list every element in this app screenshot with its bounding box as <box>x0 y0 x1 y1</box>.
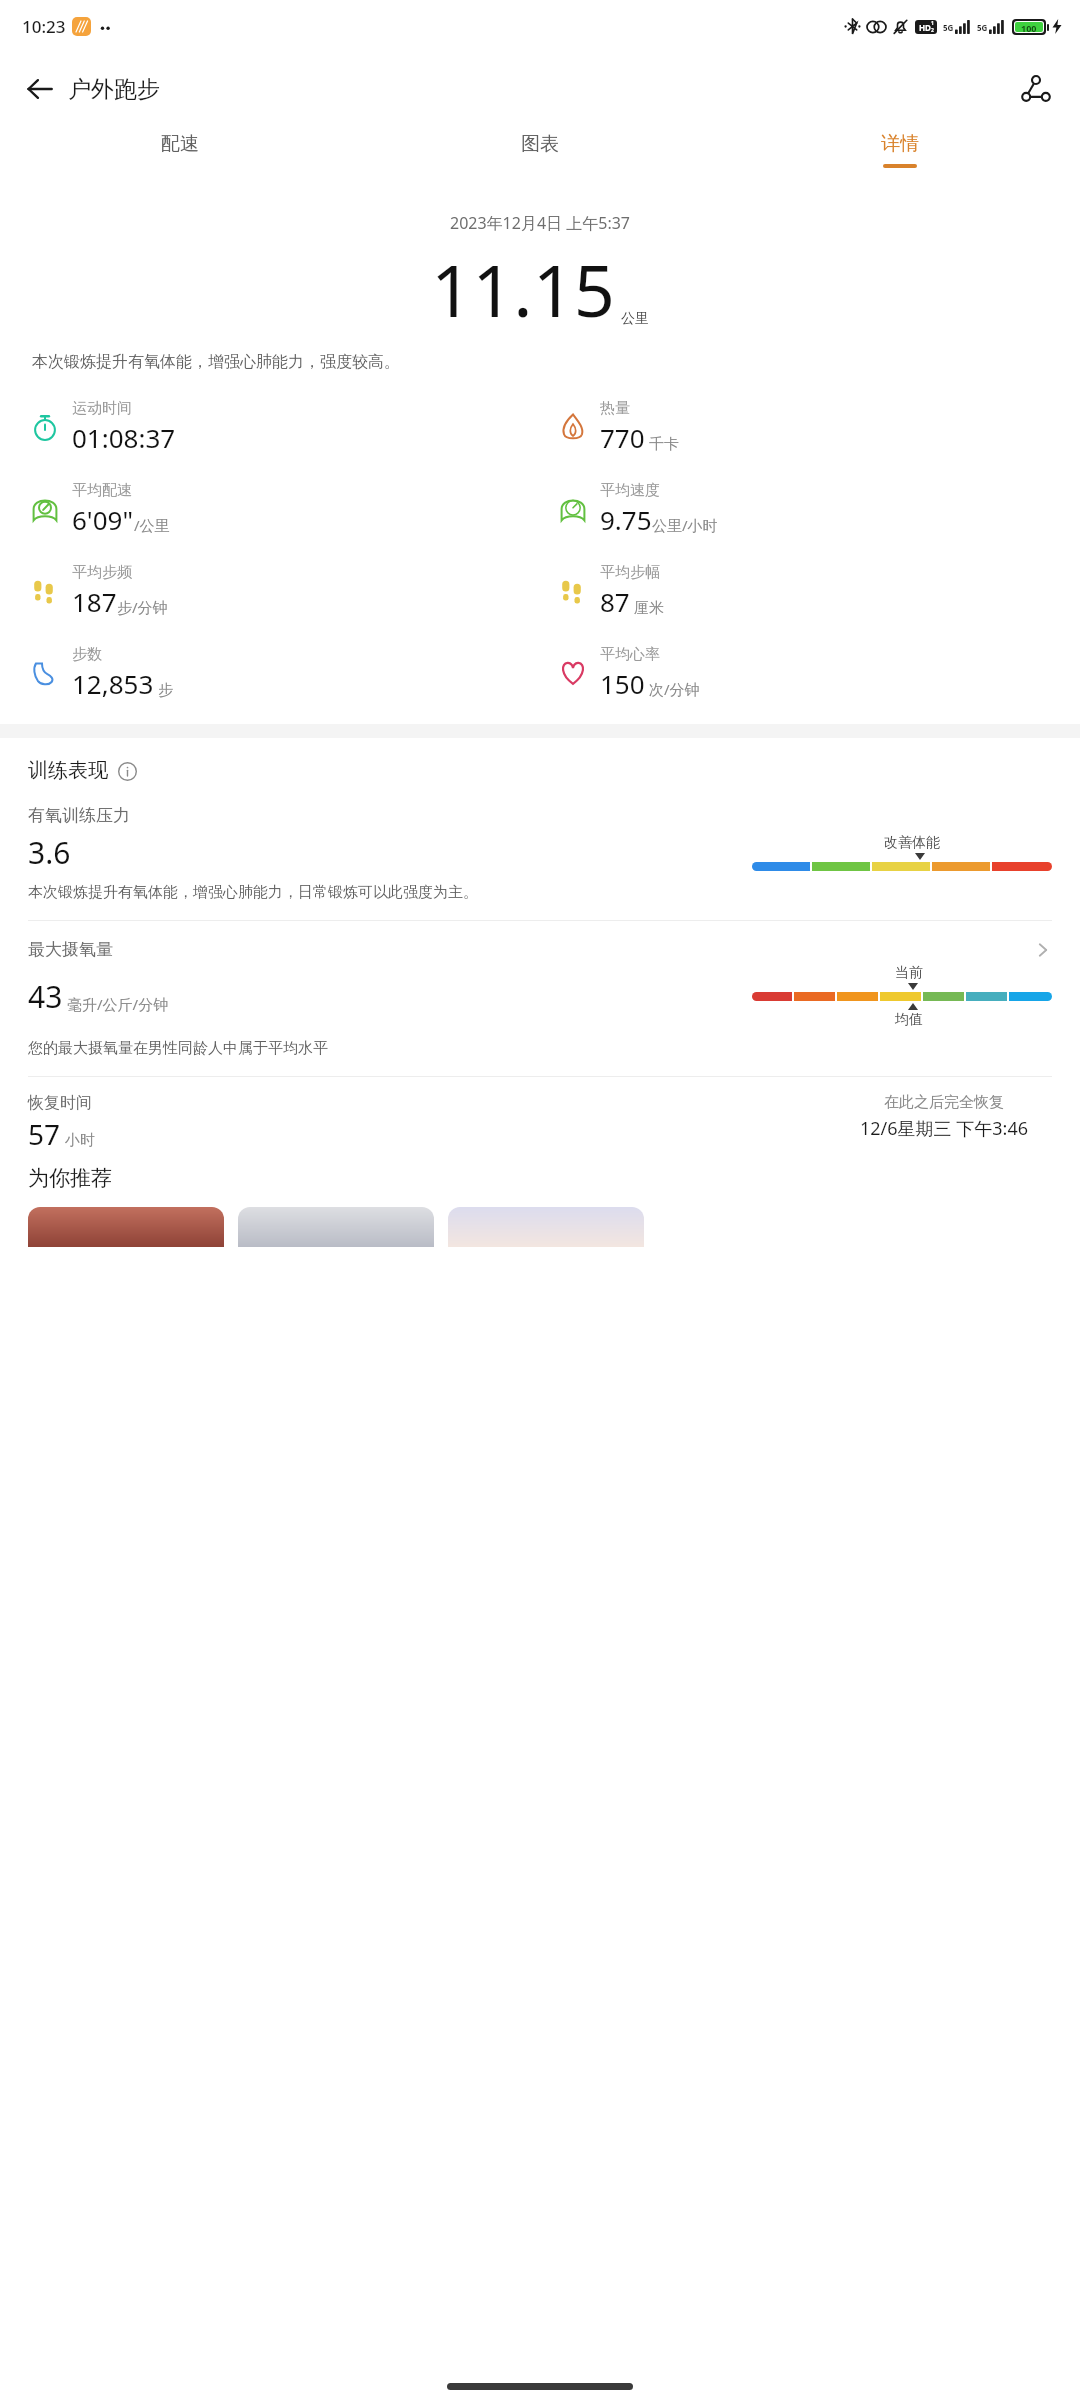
button[interactable]: 平均速度 <box>556 468 718 550</box>
button[interactable]: 平均步幅 <box>556 550 664 632</box>
staticText: 户外跑步 <box>68 75 160 104</box>
button[interactable]: Back <box>14 63 66 115</box>
staticText: 训练表现 <box>28 758 108 783</box>
staticText: 均值 <box>895 1011 923 1029</box>
staticText: 小时 <box>65 1131 95 1150</box>
button[interactable]: 详情 <box>720 126 1080 190</box>
button[interactable]: 配速 <box>0 126 360 190</box>
staticText: 毫升/公斤/分钟 <box>67 994 169 1014</box>
button[interactable]: 图表 <box>360 126 720 190</box>
staticText: 平均步频 <box>72 563 132 582</box>
button[interactable]: 运动时间 <box>28 386 176 468</box>
staticText: 步 <box>154 679 173 699</box>
staticText: 步数 <box>72 645 102 664</box>
staticText: 详情 <box>881 132 919 156</box>
button[interactable] <box>238 1207 434 1247</box>
staticText: 当前 <box>895 964 923 982</box>
staticText: 步/分钟 <box>117 597 168 617</box>
staticText: 为你推荐 <box>28 1165 112 1191</box>
staticText: 10:23 <box>22 15 66 38</box>
staticText: 本次锻炼提升有氧体能，增强心肺能力，日常锻炼可以此强度为主。 <box>28 883 478 902</box>
staticText: 3.6 <box>28 832 71 873</box>
staticText: 有氧训练压力 <box>28 805 130 826</box>
staticText: 150 <box>600 666 645 701</box>
staticText: 100 <box>1021 22 1037 32</box>
staticText: 平均速度 <box>600 481 660 500</box>
staticText: 平均步幅 <box>600 563 660 582</box>
staticText: 热量 <box>600 399 630 418</box>
staticText: HD <box>919 22 931 33</box>
staticText: 57 <box>28 1115 61 1153</box>
staticText: 您的最大摄氧量在男性同龄人中属于平均水平 <box>28 1039 328 1058</box>
staticText: 01:08:37 <box>72 420 176 455</box>
staticText: 配速 <box>161 132 199 156</box>
staticText: 平均心率 <box>600 645 660 664</box>
staticText: 改善体能 <box>884 834 940 852</box>
staticText: /公里 <box>134 515 170 535</box>
staticText: 5G <box>977 22 988 33</box>
staticText: 12,853 <box>72 666 154 701</box>
staticText: 11.15 <box>431 240 616 338</box>
staticText: 公里 <box>621 310 649 328</box>
button[interactable]: Info <box>116 760 138 782</box>
staticText: 千卡 <box>645 433 679 453</box>
staticText: 运动时间 <box>72 399 132 418</box>
staticText: 恢复时间 <box>28 1093 92 1113</box>
staticText: 最大摄氧量 <box>28 939 113 960</box>
button[interactable]: 步数 <box>28 632 173 714</box>
staticText: 5G <box>943 22 954 33</box>
staticText: 6'09" <box>72 502 134 537</box>
staticText: 本次锻炼提升有氧体能，增强心肺能力，强度较高。 <box>32 352 400 372</box>
staticText: 厘米 <box>630 597 664 617</box>
staticText: 图表 <box>521 132 559 156</box>
staticText: 12/6星期三 下午3:46 <box>860 1116 1028 1141</box>
staticText: 187 <box>72 584 117 619</box>
staticText: 1 <box>931 20 934 27</box>
staticText: 平均配速 <box>72 481 132 500</box>
staticText: 9.75 <box>600 502 652 537</box>
button[interactable]: 平均步频 <box>28 550 168 632</box>
button[interactable] <box>448 1207 644 1247</box>
button[interactable]: 平均配速 <box>28 468 170 550</box>
staticText: 43 <box>28 976 63 1017</box>
button[interactable]: Share <box>1010 63 1062 115</box>
button[interactable]: 热量 <box>556 386 679 468</box>
staticText: 87 <box>600 584 630 619</box>
button[interactable]: 平均心率 <box>556 632 700 714</box>
button[interactable] <box>28 1207 224 1247</box>
button[interactable]: 最大摄氧量 <box>28 939 1052 960</box>
staticText: 2 <box>931 27 934 34</box>
staticText: 2023年12月4日 上午5:37 <box>450 212 630 234</box>
staticText: 次/分钟 <box>645 679 700 699</box>
staticText: 770 <box>600 420 645 455</box>
staticText: 在此之后完全恢复 <box>884 1093 1004 1112</box>
staticText: 公里/小时 <box>652 515 718 535</box>
